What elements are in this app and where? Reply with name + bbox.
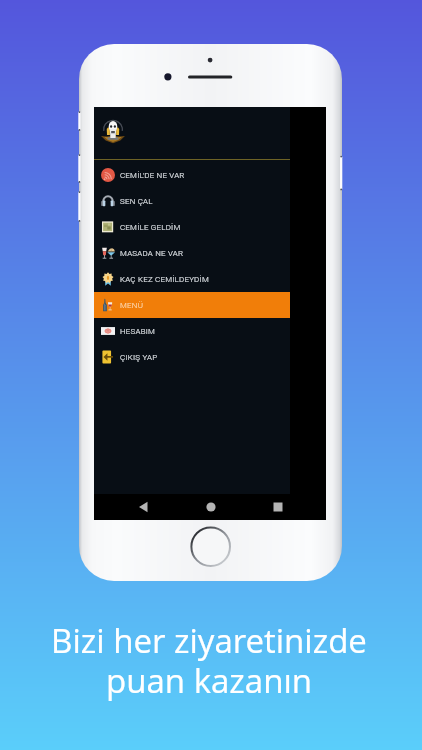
button[interactable]: ÇIKIŞ YAP [94,344,290,370]
button[interactable]: CEMİLE GELDİM [94,214,290,240]
staticText: CEMİLE GELDİM [120,223,181,232]
staticText: MASADA NE VAR [120,249,184,258]
button[interactable]: MASADA NE VAR [94,240,290,266]
staticText: ÇIKIŞ YAP [120,353,158,362]
staticText: MENÜ [120,301,144,310]
staticText: Bizi her ziyaretinizde puan kazanın [0,618,420,703]
staticText: SEN ÇAL [120,197,153,206]
staticText: CEMİL'DE NE VAR [120,171,185,180]
button[interactable]: SEN ÇAL [94,188,290,214]
button[interactable]: MENÜ [94,292,290,318]
button[interactable]: CEMİL'DE NE VAR [94,162,290,188]
button[interactable]: HESABIM [94,318,290,344]
staticText: HESABIM [120,327,156,336]
staticText: KAÇ KEZ CEMİLDEYDİM [120,275,209,284]
button[interactable]: KAÇ KEZ CEMİLDEYDİM [94,266,290,292]
